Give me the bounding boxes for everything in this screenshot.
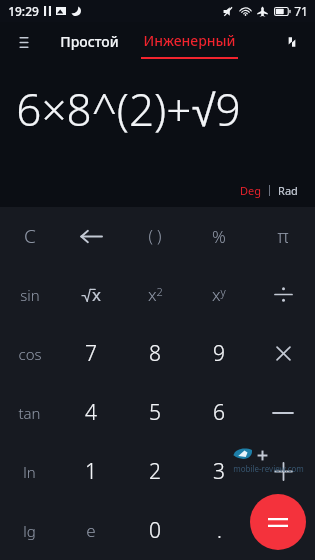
staticText: Rad [278, 183, 298, 198]
button[interactable]: 6 [187, 383, 251, 442]
button[interactable]: 0 [123, 501, 187, 560]
button[interactable]: π [251, 207, 315, 265]
staticText: 9 [213, 339, 225, 368]
button[interactable]: x2 [123, 265, 187, 324]
button[interactable]: ( ) [123, 207, 187, 265]
staticText: x2 [148, 283, 163, 306]
button[interactable]: . [187, 501, 251, 560]
button[interactable]: 1 [59, 442, 123, 501]
button[interactable]: % [187, 207, 251, 265]
button[interactable]: e [59, 501, 123, 560]
button[interactable]: 5 [123, 383, 187, 442]
button[interactable]: 9 [187, 324, 251, 383]
staticText: ln [23, 462, 36, 482]
button[interactable]: Deg [237, 181, 264, 200]
button[interactable]: 2 [123, 442, 187, 501]
button[interactable]: Plus [251, 442, 315, 501]
button[interactable]: tan [0, 383, 59, 442]
button[interactable]: Square root of x [59, 265, 123, 324]
staticText: 4 [85, 398, 97, 427]
button[interactable]: Инженерный [141, 22, 238, 61]
button[interactable]: Backspace [59, 207, 123, 265]
staticText: mobile-review.com [233, 463, 304, 474]
staticText: 8 [149, 339, 161, 368]
button[interactable]: History [276, 26, 308, 58]
button[interactable]: Equals [250, 494, 306, 550]
staticText: 3 [213, 457, 225, 486]
button[interactable]: cos [0, 324, 59, 383]
staticText: 7 [85, 339, 97, 368]
staticText: x [92, 283, 101, 306]
button[interactable]: sin [0, 265, 59, 324]
staticText: Deg [240, 183, 261, 198]
button[interactable]: 7 [59, 324, 123, 383]
staticText: cos [18, 344, 42, 364]
button[interactable]: Menu [7, 25, 41, 59]
staticText: xy [212, 283, 226, 306]
button[interactable]: C [0, 207, 59, 265]
staticText: . [217, 517, 222, 544]
staticText: e [86, 519, 96, 542]
staticText: 6×8^(2)+√9 [16, 79, 241, 139]
staticText: 6 [213, 398, 225, 427]
staticText: tan [18, 403, 41, 423]
button[interactable]: Rad [275, 181, 301, 200]
button[interactable]: 4 [59, 383, 123, 442]
staticText: Простой [60, 32, 119, 51]
staticText: 2 [149, 457, 161, 486]
button[interactable]: Minus [251, 383, 315, 442]
staticText: sin [20, 285, 40, 305]
staticText: ( ) [148, 225, 162, 247]
button[interactable]: Multiply [251, 324, 315, 383]
button[interactable]: xy [187, 265, 251, 324]
staticText: C [24, 223, 36, 249]
staticText: Инженерный [143, 31, 236, 50]
staticText: 1 [85, 457, 97, 486]
staticText: % [212, 225, 226, 248]
button[interactable]: 8 [123, 324, 187, 383]
button[interactable]: lg [0, 501, 59, 560]
staticText: 71 [294, 3, 308, 19]
button[interactable]: Простой [48, 22, 131, 61]
staticText: π [277, 224, 289, 249]
staticText: lg [23, 521, 36, 541]
staticText: 19:29 [8, 3, 39, 19]
button[interactable]: 3 [187, 442, 251, 501]
staticText: 5 [149, 398, 161, 427]
staticText: 0 [149, 516, 161, 545]
button[interactable]: ln [0, 442, 59, 501]
button[interactable]: Divide [251, 265, 315, 324]
